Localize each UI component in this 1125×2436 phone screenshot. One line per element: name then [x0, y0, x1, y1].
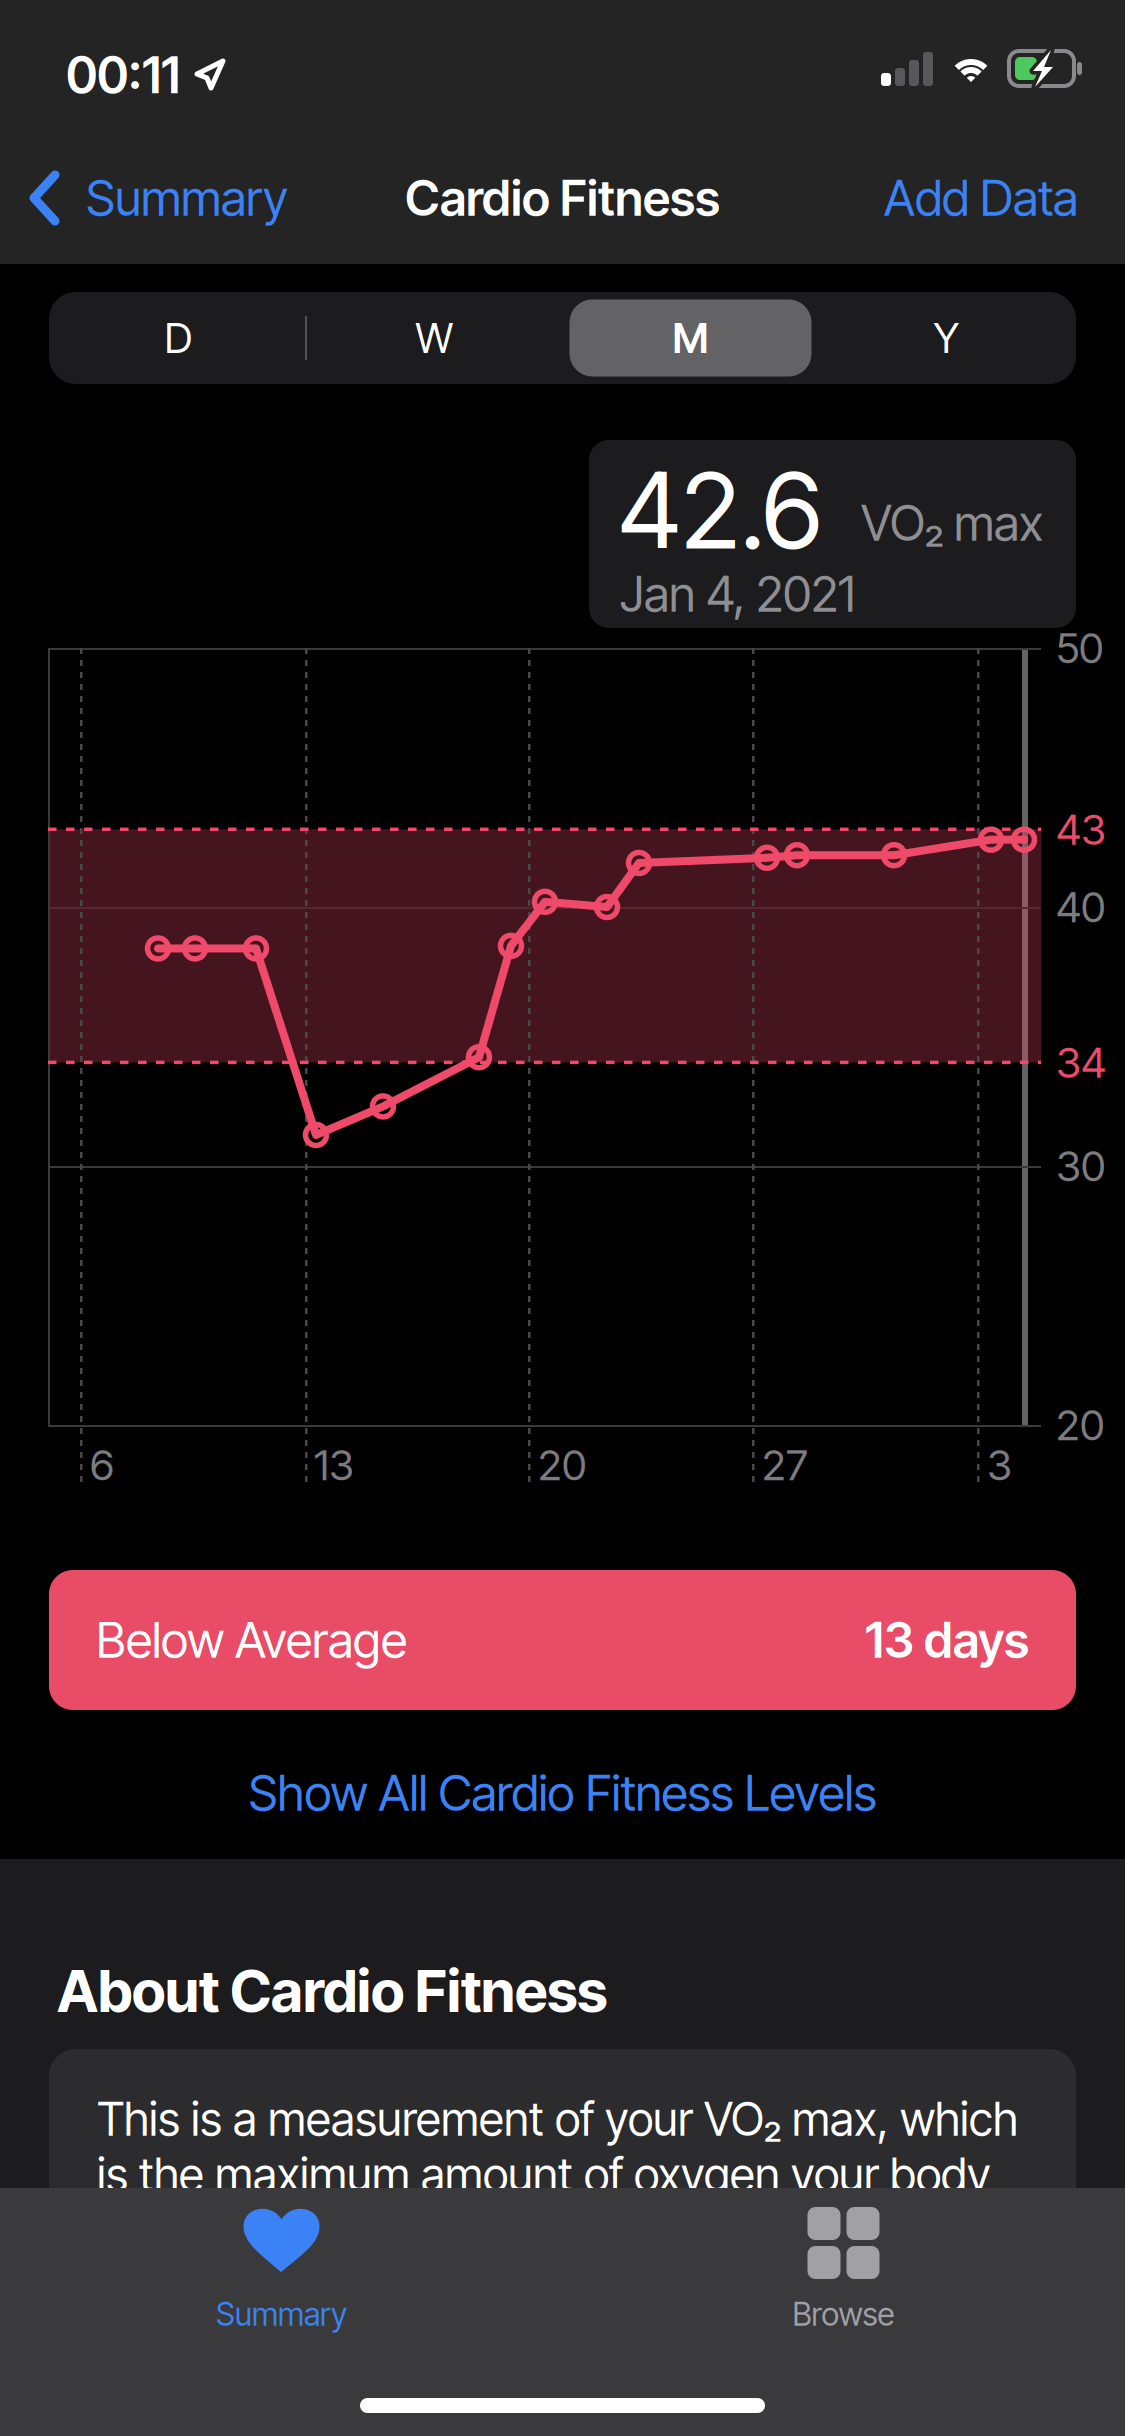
staticText: Y [933, 313, 959, 363]
staticText: 20 [1056, 1399, 1104, 1450]
staticText: 6 [90, 1439, 114, 1490]
staticText: 13 days [865, 1610, 1029, 1670]
button[interactable]: W [306, 292, 562, 384]
staticText: 13 [314, 1439, 354, 1490]
staticText: Cardio Fitness [405, 168, 720, 228]
staticText: M [672, 313, 708, 363]
button[interactable]: M [562, 292, 818, 384]
button[interactable]: Show All Cardio Fitness Levels [0, 1745, 1125, 1841]
staticText: VO₂ max [861, 493, 1043, 553]
staticText: 42.6 [618, 446, 822, 574]
staticText: Below Average [96, 1610, 407, 1670]
staticText: 27 [762, 1439, 808, 1490]
staticText: 43 [1056, 804, 1106, 855]
staticText: 50 [1056, 622, 1103, 673]
staticText: Show All Cardio Fitness Levels [248, 1763, 876, 1823]
staticText: 30 [1056, 1140, 1105, 1191]
button[interactable]: Add Data [820, 150, 1078, 246]
staticText: This is a measurement of your VO₂ max, w… [97, 2091, 1018, 2258]
staticText: 34 [1056, 1037, 1106, 1088]
button[interactable]: Below Average [49, 1570, 1076, 1710]
staticText: 40 [1056, 881, 1105, 932]
staticText: Summary [86, 168, 288, 228]
staticText: D [164, 313, 192, 363]
staticText: W [415, 313, 453, 363]
button[interactable]: Summary [0, 2202, 562, 2336]
staticText: About Cardio Fitness [57, 1956, 607, 2026]
staticText: Add Data [884, 168, 1078, 228]
button[interactable]: Browse [562, 2202, 1124, 2336]
staticText: 00:11 [66, 45, 180, 105]
staticText: 20 [538, 1439, 586, 1490]
staticText: 3 [987, 1439, 1012, 1490]
staticText: Jan 4, 2021 [620, 564, 855, 624]
button[interactable]: D [50, 292, 306, 384]
staticText: Browse [792, 2295, 894, 2333]
button[interactable]: Y [818, 292, 1074, 384]
button[interactable]: Summary [20, 150, 350, 246]
staticText: Summary [216, 2295, 347, 2333]
